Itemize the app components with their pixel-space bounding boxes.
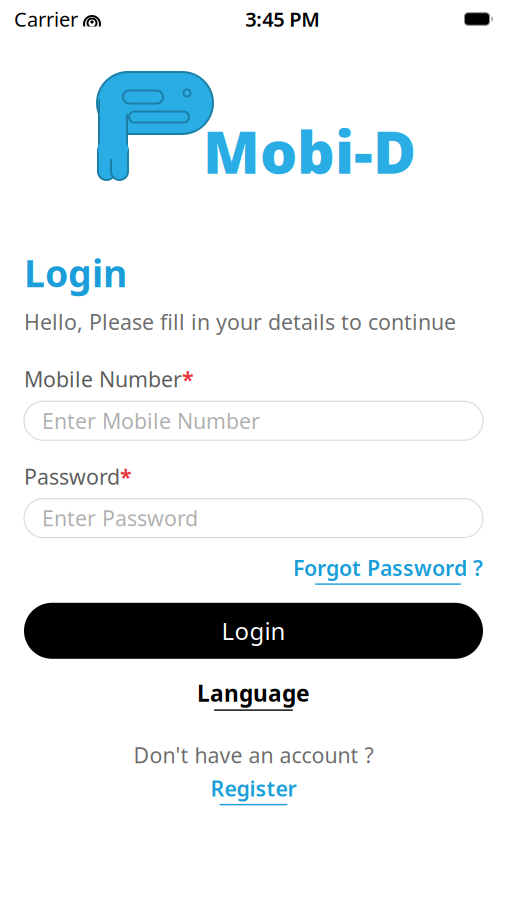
staticText: *	[120, 462, 132, 490]
staticText: 3:45 PM	[245, 6, 320, 32]
staticText: Mobi-D	[203, 112, 416, 190]
staticText: Register	[210, 774, 296, 802]
staticText: Hello, Please fill in your details to co…	[24, 308, 456, 336]
staticText: Forgot Password ?	[293, 554, 483, 582]
staticText: Language	[197, 678, 310, 708]
staticText: Carrier	[14, 6, 78, 32]
button[interactable]: Login	[24, 603, 483, 659]
staticText: Login	[221, 615, 285, 647]
staticText: Password	[24, 462, 120, 490]
button[interactable]: Forgot Password ?	[293, 554, 483, 585]
staticText: Mobile Number	[24, 365, 182, 393]
button[interactable]: Language	[197, 678, 310, 711]
staticText: Enter Mobile Number	[42, 407, 260, 435]
staticText: *	[182, 365, 194, 393]
staticText: Login	[24, 248, 127, 298]
button[interactable]: Enter Password	[24, 499, 483, 538]
button[interactable]: Register	[210, 774, 296, 805]
staticText: Enter Password	[42, 504, 198, 532]
staticText: Don't have an account ?	[133, 741, 373, 769]
button[interactable]: Enter Mobile Number	[24, 401, 483, 440]
